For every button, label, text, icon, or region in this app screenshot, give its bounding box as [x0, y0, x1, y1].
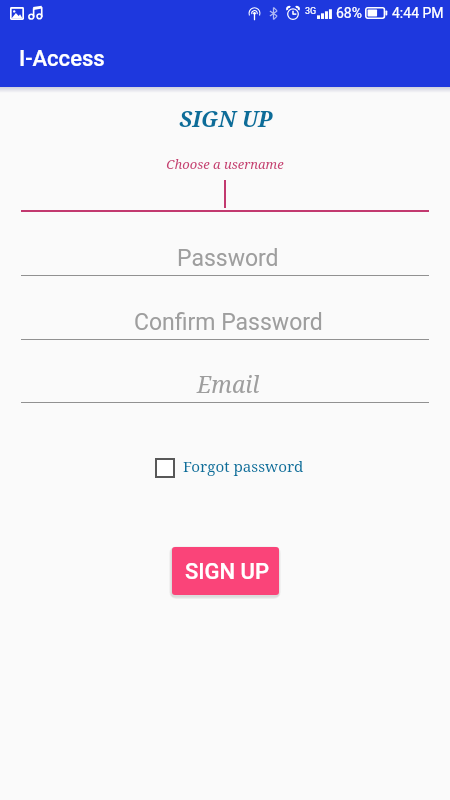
staticText: Choose a username — [0, 155, 450, 173]
button[interactable]: Forgot password — [155, 453, 304, 482]
button[interactable]: Password — [21, 239, 429, 276]
button[interactable]: Confirm Password — [21, 303, 429, 340]
other: Alarm set — [286, 6, 300, 20]
staticText: 3G — [305, 6, 317, 17]
other: Battery 68 percent — [365, 7, 388, 19]
other: Bluetooth — [269, 7, 278, 20]
button[interactable]: SIGN UP — [172, 547, 279, 595]
other: Signal strength — [317, 7, 332, 20]
staticText: Email — [197, 368, 260, 399]
other: Music playing — [28, 6, 43, 20]
staticText: 68% — [336, 5, 362, 21]
staticText: Forgot password — [183, 456, 304, 477]
staticText: Password — [177, 245, 279, 272]
other: Hotspot — [248, 6, 261, 20]
staticText: SIGN UP — [1, 103, 450, 133]
staticText: SIGN UP — [185, 559, 270, 585]
staticText: 4:44 PM — [392, 5, 444, 21]
other: Screenshot — [10, 7, 24, 20]
button[interactable]: Username field — [21, 180, 429, 212]
staticText: Confirm Password — [134, 309, 323, 336]
button[interactable]: Email — [21, 366, 429, 403]
staticText: I-Access — [19, 46, 105, 72]
